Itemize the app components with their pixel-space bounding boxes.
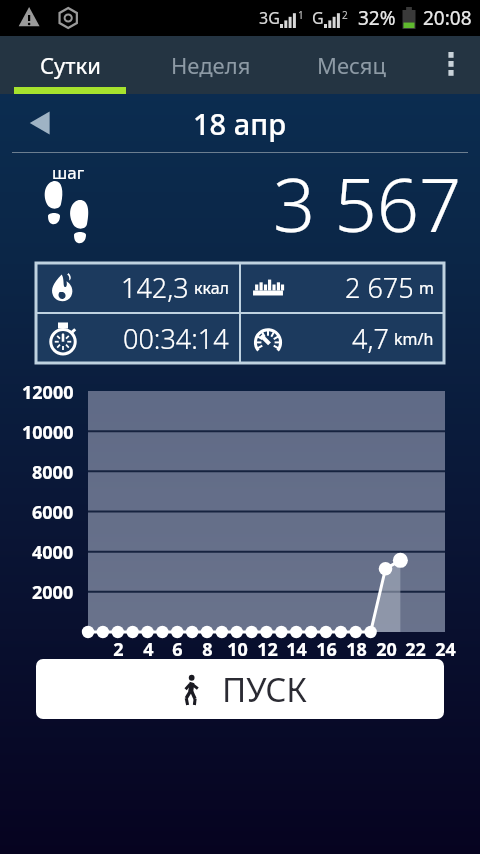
staticText: 20 (376, 637, 397, 662)
staticText: 14 (286, 637, 307, 662)
staticText: 22 (405, 637, 426, 662)
button[interactable]: 00:34:14 (36, 314, 239, 363)
staticText: 1 (298, 8, 304, 22)
staticText: 2 (113, 637, 124, 662)
staticText: 8000 (32, 460, 74, 485)
button[interactable]: 142,3 (36, 263, 239, 312)
button[interactable]: Месяц (281, 36, 422, 94)
staticText: 2 (342, 8, 348, 22)
staticText: 6 (172, 637, 183, 662)
staticText: 12000 (22, 380, 74, 405)
staticText: 8 (202, 637, 213, 662)
staticText: 20:08 (423, 5, 472, 31)
staticText: 10 (227, 637, 248, 662)
staticText: 2 675 (345, 269, 414, 306)
staticText: 3 567 (273, 153, 462, 253)
button[interactable]: More options (422, 36, 480, 94)
button[interactable]: Previous day (18, 101, 62, 145)
button[interactable]: Неделя (140, 36, 281, 94)
staticText: 3G (259, 7, 280, 29)
staticText: 12 (257, 637, 278, 662)
button[interactable]: ПУСК (36, 659, 444, 719)
button[interactable]: 4,7 (241, 314, 444, 363)
staticText: 32% (358, 5, 396, 31)
staticText: 00:34:14 (123, 320, 229, 357)
staticText: шаг (52, 161, 85, 184)
staticText: Месяц (317, 50, 386, 80)
staticText: 142,3 (121, 269, 189, 306)
button[interactable]: Сутки (0, 36, 140, 94)
staticText: 4 (143, 637, 154, 662)
staticText: ПУСК (222, 667, 307, 712)
staticText: 24 (435, 637, 456, 662)
staticText: 4,7 (352, 320, 389, 357)
staticText: Неделя (171, 50, 251, 80)
staticText: G (312, 7, 324, 29)
button[interactable]: 2 675 (241, 263, 444, 312)
staticText: ккал (194, 277, 229, 299)
staticText: Сутки (40, 50, 101, 80)
staticText: 18 апр (193, 104, 287, 143)
staticText: 16 (316, 637, 337, 662)
staticText: 2000 (32, 580, 74, 605)
staticText: 4000 (32, 540, 74, 565)
staticText: 18 (346, 637, 367, 662)
staticText: 10000 (22, 420, 74, 445)
staticText: 6000 (32, 500, 74, 525)
staticText: km/h (394, 328, 434, 350)
staticText: m (419, 277, 434, 299)
